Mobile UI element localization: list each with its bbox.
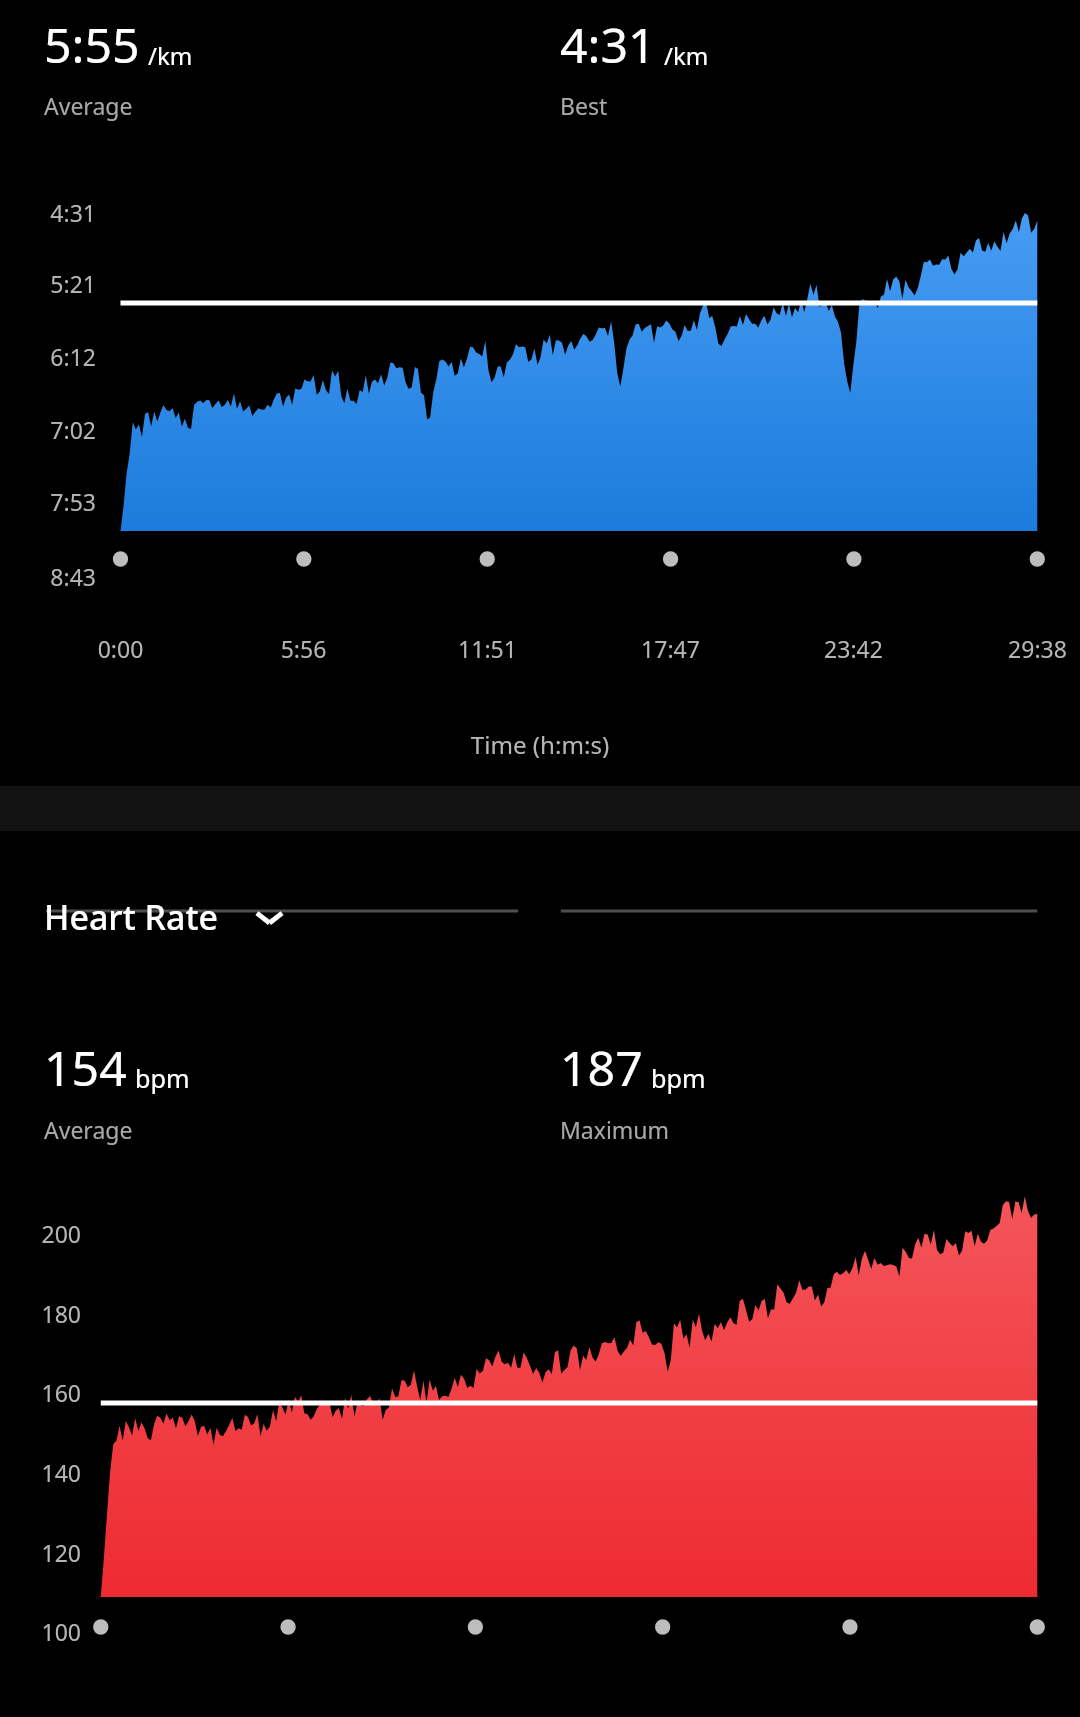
staticText: 5:21 — [0, 268, 96, 299]
staticText: 17:47 — [594, 633, 747, 664]
button[interactable]: Heart Rate — [31, 883, 301, 951]
staticText: 0:00 — [44, 633, 197, 664]
staticText: Maximum — [560, 1114, 670, 1145]
staticText: Average — [44, 1114, 133, 1145]
staticText: bpm — [651, 1061, 706, 1095]
staticText: 200 — [0, 1218, 81, 1249]
staticText: 120 — [0, 1537, 81, 1568]
staticText: Heart Rate — [44, 894, 218, 940]
staticText: 154 — [44, 1034, 127, 1100]
staticText: Time (h:m:s) — [0, 728, 1080, 761]
staticText: 7:02 — [0, 414, 96, 445]
staticText: 5:55 — [44, 11, 140, 77]
staticText: 11:51 — [411, 633, 564, 664]
other: Expand Heart Rate — [251, 899, 288, 936]
staticText: 4:31 — [560, 11, 656, 77]
staticText: 187 — [560, 1034, 643, 1100]
staticText: 5:56 — [227, 633, 380, 664]
staticText: /km — [148, 39, 193, 72]
staticText: 180 — [0, 1298, 81, 1329]
staticText: 140 — [0, 1457, 81, 1488]
staticText: Average — [44, 90, 133, 121]
staticText: Best — [560, 90, 608, 121]
staticText: 6:12 — [0, 341, 96, 372]
staticText: 23:42 — [777, 633, 930, 664]
staticText: 8:43 — [0, 561, 96, 592]
staticText: 4:31 — [0, 197, 96, 228]
staticText: 29:38 — [961, 633, 1080, 664]
staticText: 100 — [0, 1616, 81, 1647]
staticText: bpm — [135, 1061, 190, 1095]
staticText: /km — [664, 39, 709, 72]
staticText: 160 — [0, 1377, 81, 1408]
staticText: 7:53 — [0, 486, 96, 517]
